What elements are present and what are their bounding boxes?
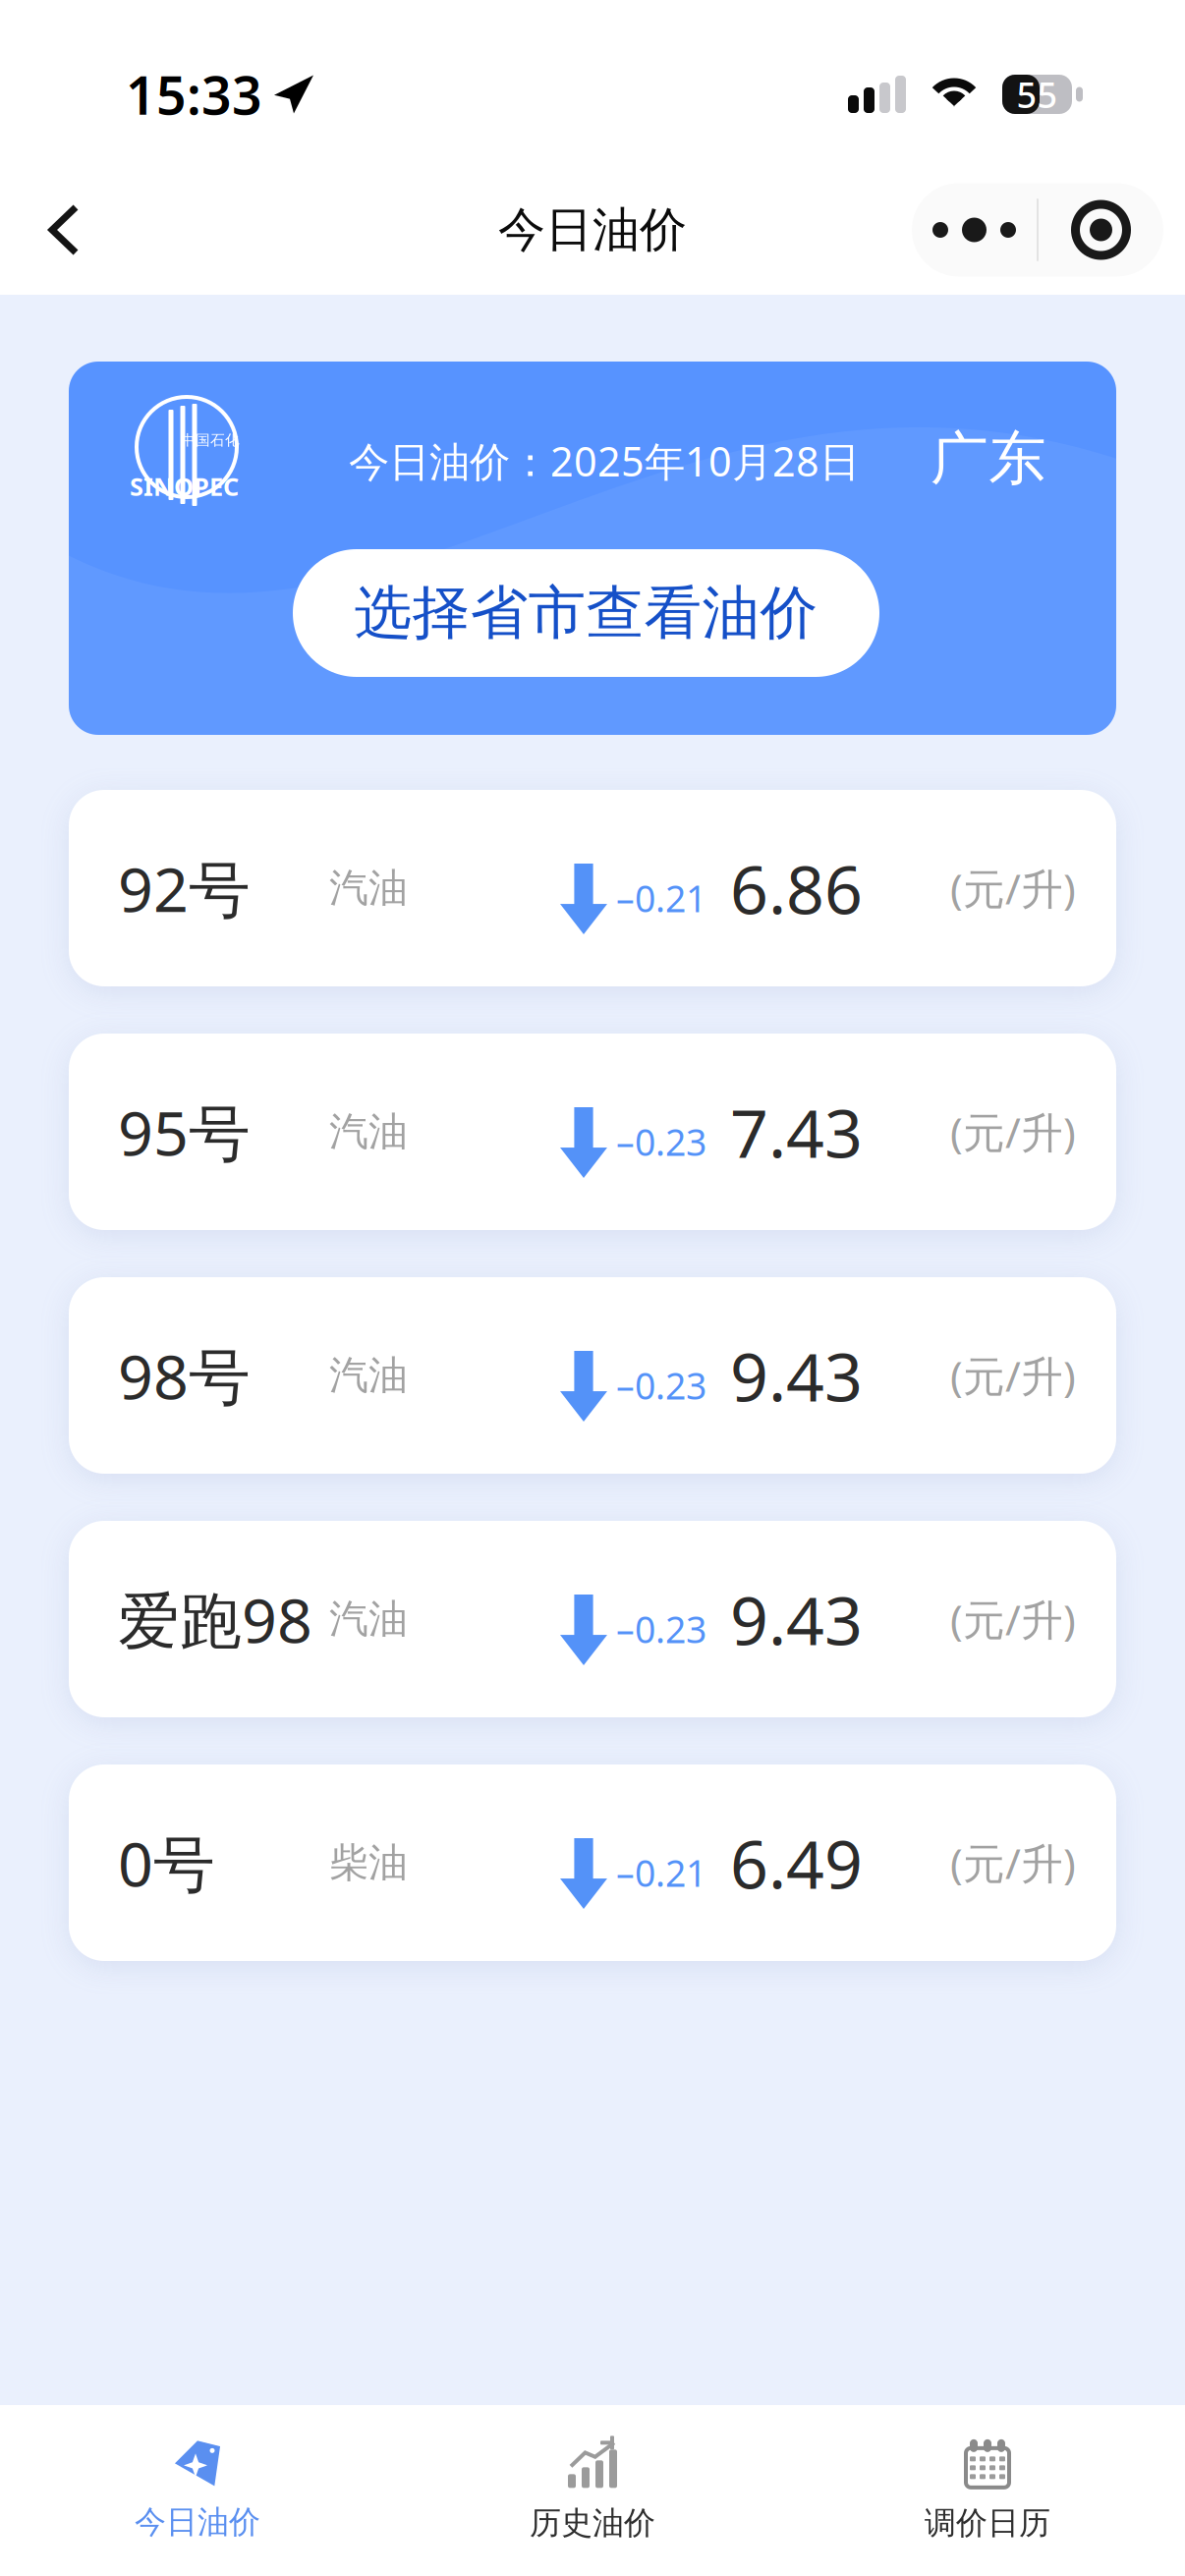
staticText: 95号 [118,1091,251,1173]
staticText: 9.43 [730,1331,863,1420]
staticText: 选择省市查看油价 [354,578,818,649]
staticText: 汽油 [329,1108,408,1156]
staticText: 历史油价 [530,2504,655,2542]
staticText: 调价日历 [925,2504,1050,2542]
button[interactable]: Back [0,189,119,295]
staticText: 今日油价：2025年10月28日 [349,434,860,488]
staticText: (元/升) [950,1348,1076,1403]
button[interactable]: 选择省市查看油价 [293,549,879,677]
staticText: –0.21 [616,1848,706,1897]
staticText: 柴油 [329,1839,408,1887]
staticText: 汽油 [329,1351,408,1400]
staticText: 92号 [118,847,251,929]
staticText: –0.23 [616,1361,706,1410]
staticText: 15:33 [126,60,262,129]
staticText: 0号 [118,1822,215,1904]
staticText: 爱跑98 [118,1578,312,1660]
button[interactable]: More [912,183,1037,277]
button[interactable]: 爱跑98 [69,1521,1116,1717]
button[interactable]: Close [1039,183,1163,277]
staticText: 98号 [118,1335,251,1416]
staticText: (元/升) [950,1104,1076,1160]
button[interactable]: 历史油价 [395,2405,790,2576]
button[interactable]: 0号 [69,1764,1116,1961]
staticText: (元/升) [950,1835,1076,1891]
staticText: 55 [1016,71,1058,118]
staticText: 广东 [931,423,1046,494]
staticText: 7.43 [730,1087,863,1176]
button[interactable]: 今日油价 [0,2405,395,2576]
button[interactable]: 调价日历 [790,2405,1185,2576]
staticText: 汽油 [329,864,408,912]
staticText: 9.43 [730,1575,863,1663]
staticText: –0.23 [616,1117,706,1166]
button[interactable]: 98号 [69,1277,1116,1474]
staticText: (元/升) [950,860,1076,916]
button[interactable]: 95号 [69,1034,1116,1230]
staticText: (元/升) [950,1591,1076,1647]
staticText: 6.86 [730,844,863,932]
staticText: 中国石化 [181,431,240,449]
staticText: 6.49 [730,1818,863,1907]
staticText: 汽油 [329,1595,408,1643]
staticText: 今日油价 [498,201,687,259]
staticText: SINOPEC [130,470,239,503]
button[interactable]: 92号 [69,790,1116,986]
staticText: –0.21 [616,874,706,922]
staticText: 今日油价 [135,2503,260,2541]
staticText: –0.23 [616,1605,706,1653]
